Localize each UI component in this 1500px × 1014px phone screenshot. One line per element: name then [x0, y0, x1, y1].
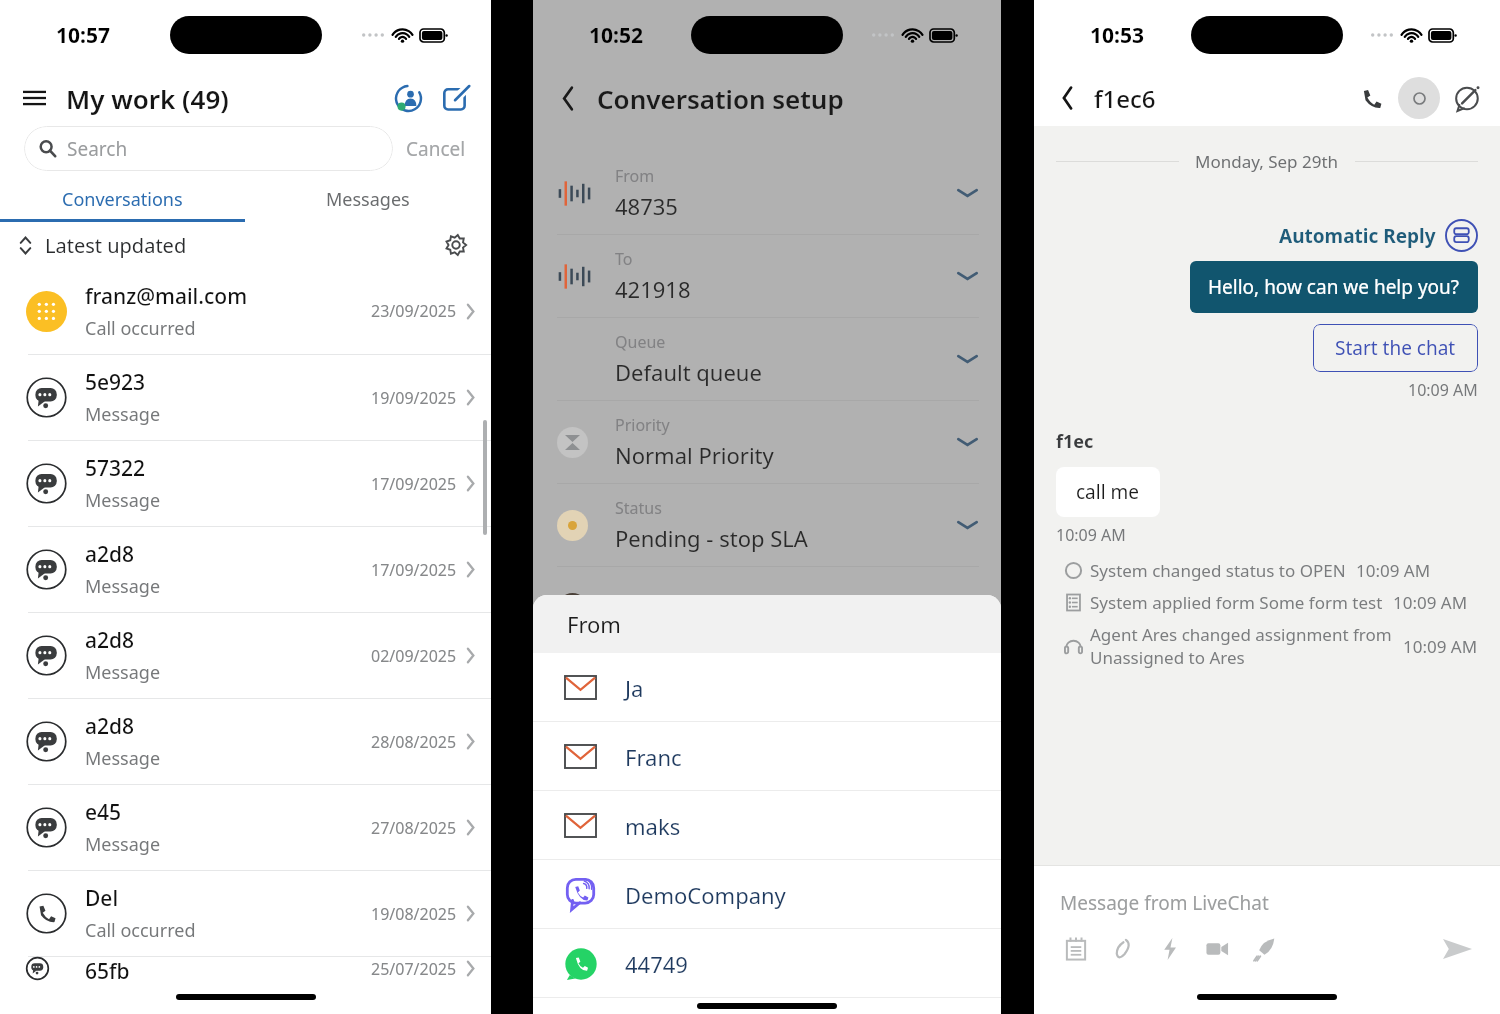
staticText: 10:53 [1090, 21, 1144, 50]
button[interactable]: Ja [533, 653, 1001, 722]
staticText: f1ec6 [1094, 82, 1156, 115]
staticText: System changed status to OPEN [1090, 559, 1346, 582]
button[interactable]: 65fb [0, 956, 491, 980]
staticText: Ja [625, 673, 644, 703]
button[interactable]: Cancel [401, 131, 471, 167]
button[interactable]: Back [1050, 81, 1084, 115]
staticText: 19/09/2025 [371, 387, 457, 409]
staticText: call me [1076, 479, 1140, 505]
button[interactable]: Send [1436, 928, 1478, 970]
staticText: Priority [615, 414, 670, 436]
staticText: Message [85, 488, 161, 513]
staticText: 57322 [85, 454, 146, 483]
button[interactable]: 44749 [533, 929, 1001, 998]
staticText: 17/09/2025 [371, 473, 457, 495]
button[interactable]: Back [551, 81, 585, 115]
staticText: 10:09 AM [1356, 559, 1431, 582]
staticText: 5e923 [85, 368, 146, 397]
button[interactable]: 5e923 [0, 354, 491, 440]
staticText: 10:52 [589, 21, 643, 50]
button[interactable]: Video [1197, 929, 1237, 969]
button[interactable]: Messages [245, 177, 491, 222]
staticText: Hello, how can we help you? [1208, 274, 1460, 300]
button[interactable]: franz@mail.com [0, 268, 491, 354]
staticText: Del [85, 884, 119, 913]
staticText: Status [615, 497, 662, 519]
button[interactable]: Del [0, 870, 491, 956]
button[interactable]: Settings [439, 228, 473, 262]
button[interactable]: Assignee [533, 567, 1001, 650]
staticText: Conversation setup [597, 81, 844, 116]
staticText: From [567, 609, 621, 639]
staticText: f1ec [1056, 429, 1094, 454]
staticText: From [615, 165, 655, 187]
staticText: Latest updated [45, 232, 187, 259]
staticText: Conversations [62, 187, 183, 212]
staticText: franz@mail.com [85, 282, 248, 311]
button[interactable]: Call [1352, 79, 1390, 117]
staticText: 27/08/2025 [371, 817, 457, 839]
staticText: Agent Ares changed assignment from Unass… [1090, 623, 1403, 669]
button[interactable]: Quick reply [1150, 929, 1190, 969]
staticText: 19/08/2025 [371, 903, 457, 925]
button[interactable]: Edit [1448, 79, 1486, 117]
staticText: Message [85, 746, 161, 771]
button[interactable]: Priority [533, 401, 1001, 484]
button[interactable]: Queue [533, 318, 1001, 401]
staticText: Messages [326, 187, 410, 212]
staticText: maks [625, 811, 681, 841]
button[interactable]: Start the chat [1313, 324, 1478, 372]
staticText: DemoCompany [625, 880, 786, 910]
staticText: Default queue [615, 357, 762, 387]
staticText: Cancel [406, 136, 466, 162]
staticText: To [615, 248, 633, 270]
button[interactable]: Status [533, 484, 1001, 567]
staticText: a2d8 [85, 540, 135, 569]
button[interactable]: New conversation [435, 77, 477, 119]
button[interactable]: Hello, how can we help you? [1190, 261, 1478, 313]
button[interactable]: Contacts [387, 77, 429, 119]
staticText: Queue [615, 331, 666, 353]
staticText: Normal Priority [615, 440, 774, 470]
button[interactable]: Status [1398, 77, 1440, 119]
button[interactable]: e45 [0, 784, 491, 870]
button[interactable]: Franc [533, 722, 1001, 791]
button[interactable]: Notes [1056, 929, 1096, 969]
staticText: 10:57 [56, 21, 110, 50]
staticText: 23/09/2025 [371, 300, 457, 322]
button[interactable]: Menu [14, 78, 54, 118]
button[interactable]: call me [1056, 467, 1160, 517]
staticText: e45 [85, 798, 122, 827]
staticText: Start the chat [1335, 335, 1456, 361]
button[interactable]: 57322 [0, 440, 491, 526]
staticText: Message [85, 660, 161, 685]
staticText: 44749 [625, 949, 688, 979]
staticText: 48735 [615, 191, 678, 221]
button[interactable]: Attach [1103, 929, 1143, 969]
button[interactable]: a2d8 [0, 698, 491, 784]
button[interactable]: From [533, 152, 1001, 235]
staticText: Message [85, 402, 161, 427]
staticText: 10:09 AM [1403, 635, 1478, 658]
button[interactable]: Send later [1244, 929, 1284, 969]
staticText: 421918 [615, 274, 691, 304]
button[interactable]: DemoCompany [533, 860, 1001, 929]
staticText: Automatic Reply [1279, 223, 1436, 249]
staticText: 10:09 AM [1393, 591, 1468, 614]
staticText: Call occurred [85, 918, 196, 943]
staticText: 25/07/2025 [371, 958, 457, 980]
staticText: Message [85, 832, 161, 857]
button[interactable]: Search [24, 126, 393, 171]
staticText: Message from LiveChat [1060, 890, 1269, 916]
staticText: a2d8 [85, 626, 135, 655]
button[interactable]: a2d8 [0, 612, 491, 698]
button[interactable]: To [533, 235, 1001, 318]
button[interactable]: maks [533, 791, 1001, 860]
staticText: Pending - stop SLA [615, 523, 808, 553]
staticText: Search [67, 136, 128, 162]
staticText: 65fb [85, 957, 130, 980]
button[interactable]: Latest updated [18, 232, 187, 259]
button[interactable]: a2d8 [0, 526, 491, 612]
button[interactable]: Conversations [0, 177, 245, 222]
